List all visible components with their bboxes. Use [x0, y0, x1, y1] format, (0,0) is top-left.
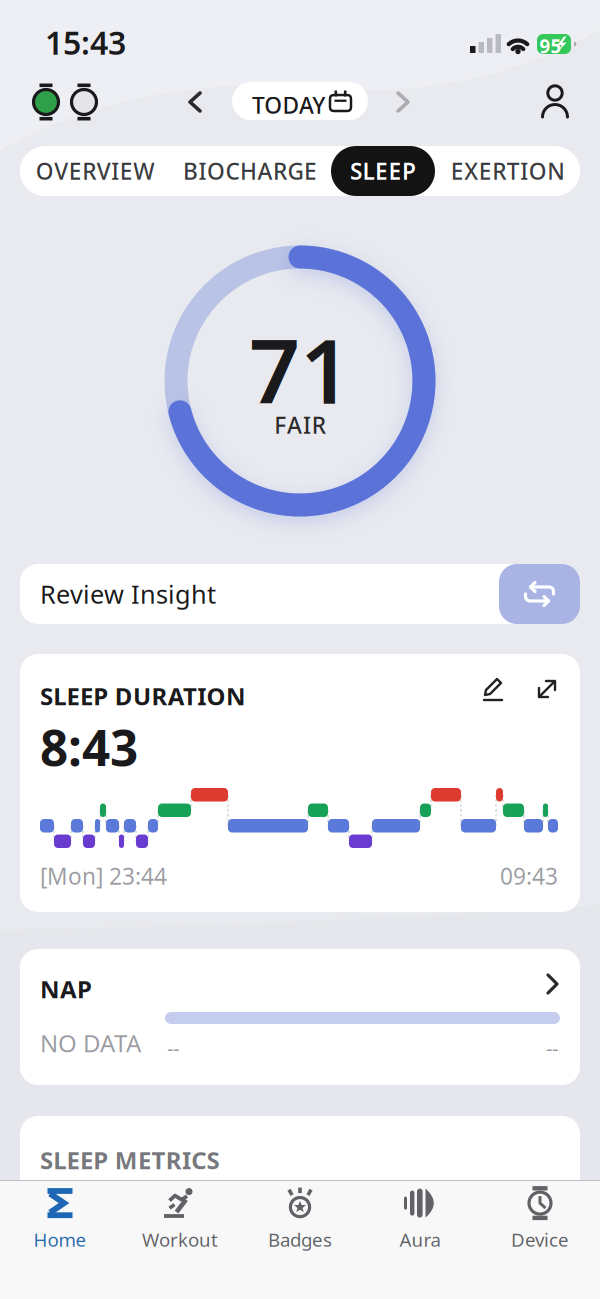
staticText: 8:43: [40, 714, 138, 779]
button[interactable]: Next day: [394, 91, 414, 113]
staticText: --: [546, 1035, 558, 1062]
staticText: Home: [33, 1227, 86, 1252]
staticText: Aura: [399, 1227, 440, 1252]
button[interactable]: Badges: [250, 1188, 350, 1250]
button[interactable]: Aura: [370, 1188, 470, 1250]
staticText: SLEEP METRICS: [40, 1144, 220, 1176]
staticText: NO DATA: [40, 1027, 141, 1059]
button[interactable]: BIOCHARGE: [175, 146, 325, 196]
staticText: SLEEP DURATION: [40, 680, 246, 712]
button[interactable]: Edit sleep: [480, 676, 506, 702]
button[interactable]: SLEEP: [331, 146, 435, 196]
staticText: 71: [249, 310, 351, 428]
staticText: BIOCHARGE: [183, 156, 317, 186]
button[interactable]: EXERTION: [433, 146, 583, 196]
staticText: FAIR: [274, 410, 326, 440]
button[interactable]: Select date: [232, 82, 368, 120]
staticText: TODAY: [252, 90, 325, 120]
button[interactable]: Previous day: [186, 91, 206, 113]
button[interactable]: Profile: [538, 84, 572, 120]
staticText: NAP: [40, 973, 92, 1005]
staticText: Workout: [142, 1227, 218, 1252]
staticText: OVERVIEW: [36, 156, 154, 186]
button[interactable]: Nap details: [20, 949, 580, 1085]
staticText: 95: [539, 33, 561, 58]
staticText: 15:43: [45, 21, 126, 63]
button[interactable]: Home: [10, 1188, 110, 1250]
button[interactable]: Device: [490, 1188, 590, 1250]
staticText: Device: [511, 1227, 569, 1252]
staticText: Review Insight: [40, 577, 216, 611]
button[interactable]: OVERVIEW: [20, 146, 170, 196]
staticText: EXERTION: [451, 156, 565, 186]
button[interactable]: Refresh insight: [499, 564, 580, 624]
button[interactable]: Workout: [130, 1188, 230, 1250]
staticText: [Mon] 23:44: [40, 861, 167, 891]
button[interactable]: Expand chart: [534, 676, 560, 702]
staticText: Badges: [268, 1227, 332, 1252]
button[interactable]: Active watch: [28, 83, 64, 121]
staticText: --: [167, 1035, 179, 1062]
button[interactable]: Second watch: [66, 83, 102, 121]
staticText: 09:43: [500, 861, 558, 891]
staticText: SLEEP: [350, 156, 416, 186]
